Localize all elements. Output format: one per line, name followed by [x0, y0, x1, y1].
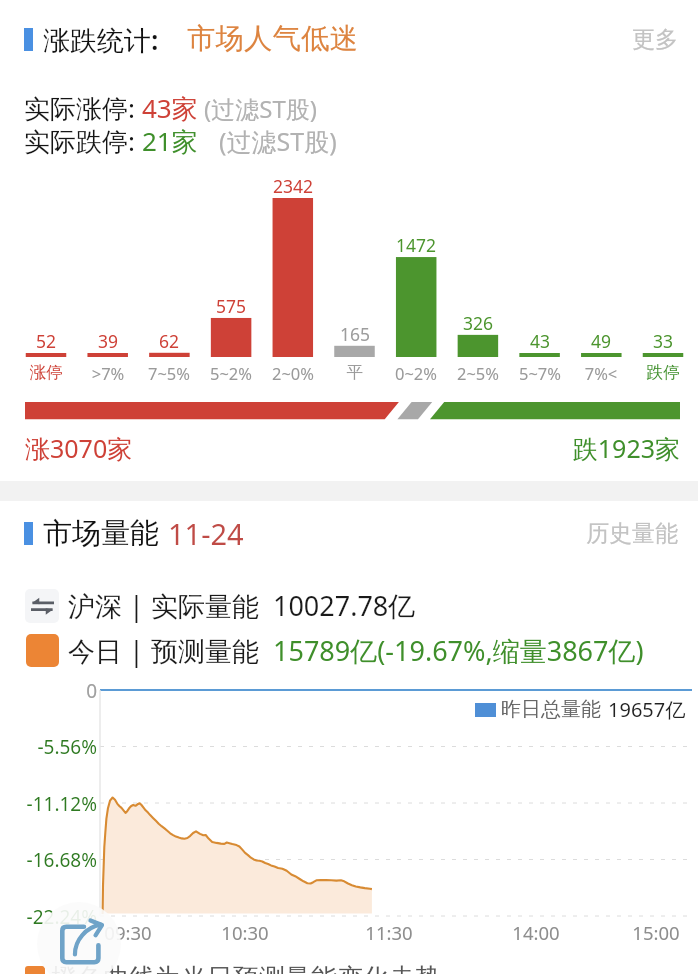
staticText: 沪深 | 实际量能 10027.78亿	[68, 587, 416, 624]
staticText: 21家	[142, 123, 198, 159]
staticText: 39	[68, 329, 148, 353]
staticText: 2342	[253, 174, 333, 198]
staticText: 实际涨停:	[24, 90, 135, 126]
staticText: 涨停	[6, 362, 86, 383]
staticText: 市场量能	[43, 515, 159, 552]
staticText: 7%<	[561, 362, 641, 384]
staticText: 575	[191, 294, 271, 318]
staticText: 09:30	[83, 920, 173, 945]
staticText: 0~2%	[376, 362, 456, 384]
staticText: 橙色曲线为当日预测量能变化走势	[51, 962, 441, 974]
staticText: 165	[315, 322, 395, 346]
staticText: 跌1923家	[0, 431, 680, 465]
staticText: 实际跌停:	[24, 123, 135, 159]
staticText: 43	[500, 329, 580, 353]
staticText: 跌停	[623, 362, 698, 383]
staticText: 5~7%	[500, 362, 580, 384]
staticText: >7%	[68, 362, 148, 384]
staticText: 2~0%	[253, 362, 333, 384]
button[interactable]: 涨跌统计:	[0, 12, 698, 66]
staticText: 49	[561, 329, 641, 353]
staticText: -11.12%	[0, 791, 97, 817]
staticText: 62	[129, 329, 209, 353]
staticText: 14:00	[491, 920, 581, 945]
staticText: 10:30	[200, 920, 290, 945]
staticText: 今日 | 预测量能	[68, 632, 273, 669]
staticText: 1472	[376, 233, 456, 257]
staticText: 326	[438, 311, 518, 335]
staticText: 2~5%	[438, 362, 518, 384]
staticText: 52	[6, 329, 86, 353]
staticText: 市场人气低迷	[187, 21, 358, 57]
staticText: 0	[0, 678, 97, 704]
staticText: (过滤ST股)	[204, 92, 317, 125]
staticText: 11:30	[344, 920, 434, 945]
staticText: -22.24%	[0, 904, 97, 930]
staticText: -16.68%	[0, 847, 97, 873]
staticText: 33	[623, 329, 698, 353]
staticText: 15789亿(-19.67%,缩量3867亿)	[273, 632, 644, 669]
staticText: 更多	[632, 25, 678, 54]
staticText: 涨跌统计:	[43, 21, 159, 58]
staticText: 昨日总量能	[501, 697, 601, 722]
staticText: 5~2%	[191, 362, 271, 384]
staticText: 15:00	[611, 920, 698, 945]
staticText: 历史量能	[586, 519, 678, 548]
staticText: 19657亿	[608, 696, 686, 723]
staticText: 11-24	[168, 514, 244, 553]
staticText: (过滤ST股)	[219, 124, 337, 158]
staticText: 43家	[142, 90, 198, 126]
button[interactable]: 市场量能	[0, 507, 698, 559]
staticText: 平	[315, 362, 395, 383]
staticText: -5.56%	[0, 734, 97, 760]
staticText: 涨3070家	[25, 431, 133, 465]
button[interactable]: Share	[37, 902, 121, 974]
staticText: 7~5%	[129, 362, 209, 384]
